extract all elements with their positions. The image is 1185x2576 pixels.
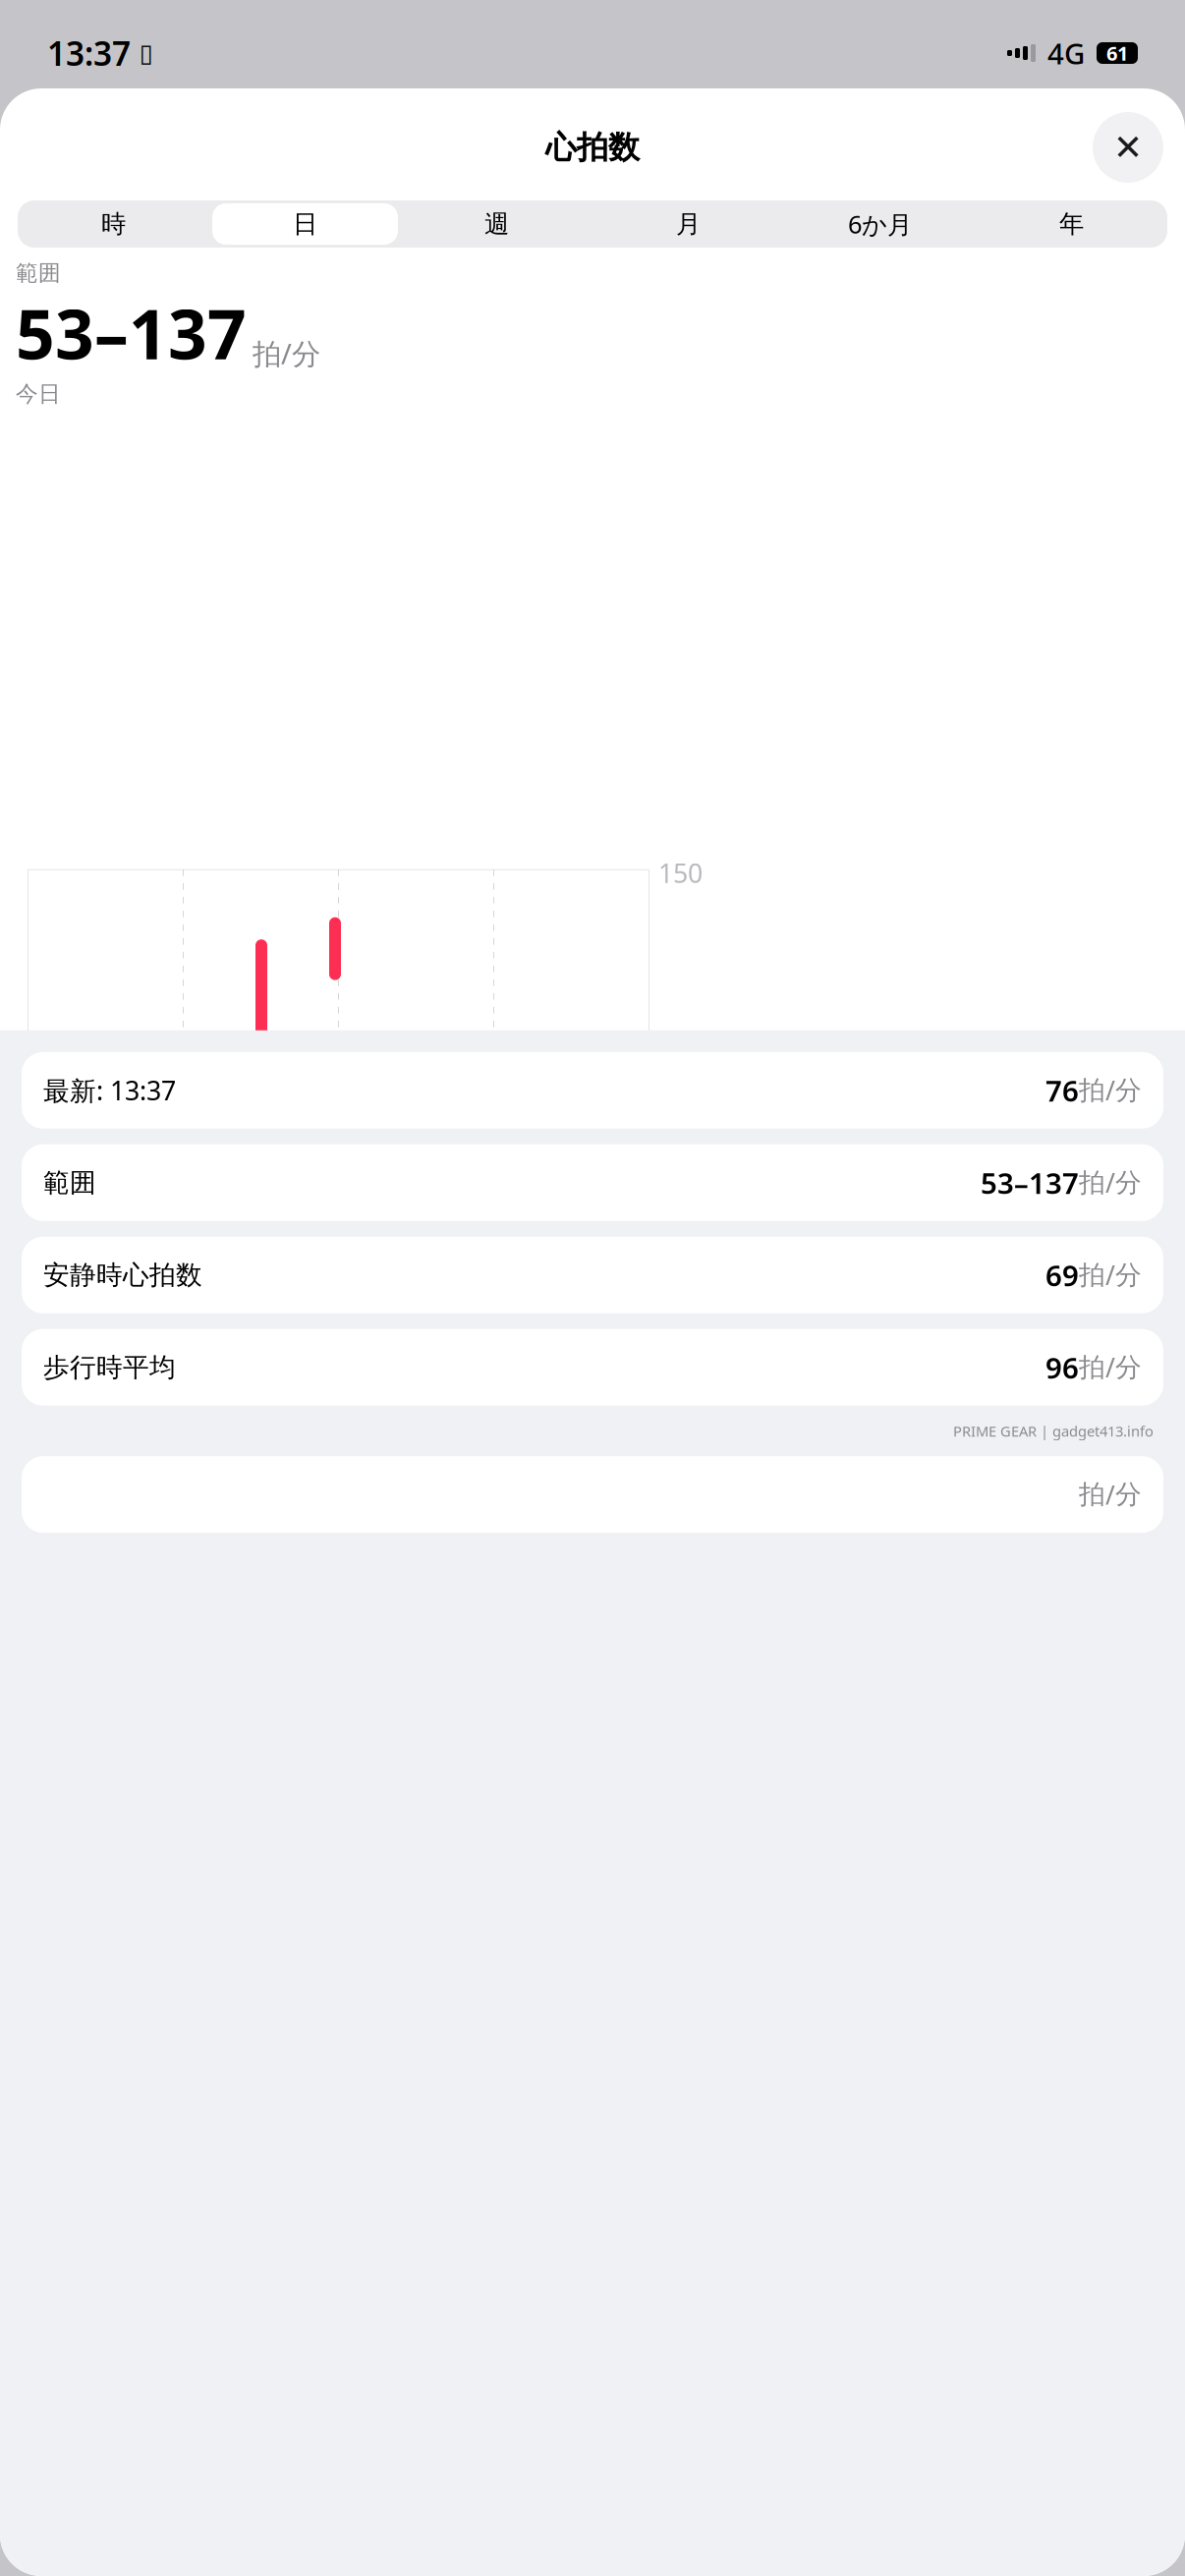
staticText: 150	[658, 856, 703, 890]
staticText: 4G	[1047, 34, 1085, 72]
staticText: 100	[658, 1040, 703, 1075]
button[interactable]: 日	[209, 200, 401, 248]
button[interactable]: 年	[976, 200, 1167, 248]
staticText: 分	[1115, 1478, 1142, 1511]
staticText: 分	[1115, 1351, 1142, 1383]
staticText: 6か月	[848, 207, 912, 241]
staticText: 週	[484, 209, 509, 239]
staticText: 拍	[1079, 1074, 1105, 1106]
staticText: /	[1105, 1350, 1115, 1385]
staticText: 13:37	[47, 31, 131, 75]
staticText: 0時	[32, 1431, 71, 1464]
staticText: 拍/分	[253, 334, 320, 372]
staticText: 心拍数	[545, 128, 640, 167]
staticText: /	[1105, 1258, 1115, 1292]
staticText: 拍	[1079, 1167, 1105, 1199]
staticText: /	[1105, 1165, 1115, 1200]
staticText: 月	[676, 209, 701, 239]
staticText: 拍	[1079, 1351, 1105, 1383]
button[interactable]: 範囲	[22, 1144, 1163, 1221]
staticText: 12時	[343, 1431, 395, 1464]
staticText: 分	[1115, 1167, 1142, 1199]
staticText: 安静時心拍数	[43, 1259, 202, 1291]
staticText: 今日	[16, 380, 61, 407]
button[interactable]: 時	[18, 200, 209, 248]
staticText: 50	[658, 1225, 688, 1260]
staticText: 時	[101, 209, 126, 239]
staticText: /	[1105, 1073, 1115, 1108]
staticText: 歩行時平均	[43, 1351, 176, 1383]
staticText: ▯	[131, 39, 153, 67]
button[interactable]: 週	[401, 200, 592, 248]
button[interactable]: 安静時心拍数	[22, 1237, 1163, 1313]
button[interactable]: 閉じる	[1093, 112, 1163, 183]
staticText: 拍	[1079, 1259, 1105, 1291]
staticText: 61	[1106, 40, 1128, 66]
staticText: 96	[1045, 1348, 1079, 1387]
staticText: 6時	[188, 1431, 226, 1464]
button[interactable]: 月	[592, 200, 784, 248]
staticText: ✕	[1113, 127, 1143, 168]
staticText: PRIME GEAR | gadget413.info	[953, 1421, 1154, 1441]
staticText: 範囲	[16, 259, 61, 287]
staticText: 76	[1045, 1071, 1079, 1109]
button[interactable]	[22, 1456, 1163, 1533]
staticText: 拍	[1079, 1478, 1105, 1511]
button[interactable]: 歩行時平均	[22, 1329, 1163, 1406]
staticText: 最新: 13:37	[43, 1073, 176, 1108]
staticText: 分	[1115, 1074, 1142, 1106]
staticText: 日	[293, 209, 317, 239]
staticText: 18時	[498, 1431, 550, 1464]
staticText: 53–137	[16, 288, 247, 378]
staticText: 範囲	[43, 1167, 96, 1199]
staticText: 69	[1045, 1256, 1079, 1294]
staticText: 分	[1115, 1259, 1142, 1291]
staticText: 年	[1059, 209, 1084, 239]
button[interactable]: 最新: 13:37	[22, 1052, 1163, 1129]
staticText: 53–137	[981, 1164, 1079, 1202]
button[interactable]: 6か月	[784, 200, 976, 248]
staticText: /	[1105, 1477, 1115, 1512]
